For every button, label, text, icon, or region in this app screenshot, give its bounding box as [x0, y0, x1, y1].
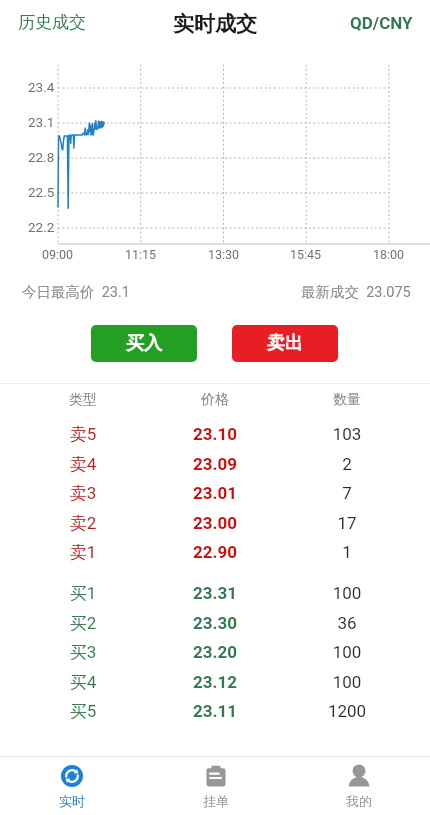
button[interactable]: 卖3 — [0, 480, 430, 506]
staticText: 100 — [281, 672, 413, 692]
staticText: 卖2 — [17, 513, 149, 534]
button[interactable]: 买3 — [0, 639, 430, 665]
button[interactable]: 买4 — [0, 669, 430, 695]
staticText: 历史成交 — [18, 12, 86, 33]
staticText: 22.2 — [28, 219, 55, 235]
staticText: 今日最高价 23.1 — [22, 283, 130, 301]
staticText: 实时成交 — [173, 11, 257, 37]
staticText: 买2 — [17, 613, 149, 634]
button[interactable]: 卖1 — [0, 539, 430, 565]
staticText: 18:00 — [373, 247, 405, 262]
staticText: 09:00 — [42, 247, 74, 262]
button[interactable]: 买5 — [0, 698, 430, 724]
button[interactable]: 挂单 — [144, 756, 287, 815]
staticText: 2 — [281, 454, 413, 474]
staticText: 买4 — [17, 672, 149, 693]
staticText: 11:15 — [125, 247, 157, 262]
button[interactable]: 卖5 — [0, 421, 430, 447]
staticText: 17 — [281, 513, 413, 533]
button[interactable]: QD/CNY — [338, 5, 430, 41]
staticText: 买1 — [17, 583, 149, 604]
button[interactable]: 类型 — [0, 387, 430, 413]
staticText: 22.90 — [149, 542, 281, 562]
button[interactable]: 卖2 — [0, 510, 430, 536]
staticText: 挂单 — [203, 793, 229, 809]
staticText: 买入 — [126, 332, 162, 355]
staticText: 23.10 — [149, 424, 281, 444]
staticText: 100 — [281, 642, 413, 662]
staticText: 100 — [281, 583, 413, 603]
staticText: 买3 — [17, 642, 149, 663]
staticText: 卖1 — [17, 542, 149, 563]
staticText: 36 — [281, 613, 413, 633]
button[interactable]: 实时 — [0, 756, 144, 815]
staticText: 卖5 — [17, 424, 149, 445]
staticText: QD/CNY — [350, 13, 413, 33]
staticText: 卖出 — [267, 332, 303, 355]
button[interactable]: 我的 — [287, 756, 430, 815]
staticText: 23.1 — [28, 114, 55, 130]
staticText: 数量 — [281, 391, 413, 409]
staticText: 13:30 — [208, 247, 240, 262]
staticText: 23.11 — [149, 701, 281, 721]
staticText: 1200 — [281, 701, 413, 721]
staticText: 买5 — [17, 701, 149, 722]
staticText: 23.01 — [149, 483, 281, 503]
staticText: 23.31 — [149, 583, 281, 603]
button[interactable]: 卖出 — [232, 325, 338, 362]
staticText: 卖4 — [17, 454, 149, 475]
staticText: 23.09 — [149, 454, 281, 474]
staticText: 7 — [281, 483, 413, 503]
staticText: 23.4 — [28, 79, 55, 95]
button[interactable]: 买2 — [0, 610, 430, 636]
button[interactable]: 买入 — [91, 325, 197, 362]
staticText: 我的 — [346, 793, 372, 809]
staticText: 103 — [281, 424, 413, 444]
staticText: 23.12 — [149, 672, 281, 692]
button[interactable]: 卖4 — [0, 451, 430, 477]
button[interactable]: 买1 — [0, 580, 430, 606]
staticText: 卖3 — [17, 483, 149, 504]
staticText: 1 — [281, 542, 413, 562]
button[interactable]: 历史成交 — [0, 4, 98, 41]
staticText: 23.20 — [149, 642, 281, 662]
staticText: 22.8 — [28, 149, 55, 165]
staticText: 类型 — [17, 391, 149, 409]
staticText: 15:45 — [290, 247, 322, 262]
staticText: 价格 — [149, 391, 281, 409]
staticText: 最新成交 23.075 — [301, 283, 411, 301]
staticText: 22.5 — [28, 184, 55, 200]
staticText: 实时 — [59, 793, 85, 809]
staticText: 23.30 — [149, 613, 281, 633]
staticText: 23.00 — [149, 513, 281, 533]
